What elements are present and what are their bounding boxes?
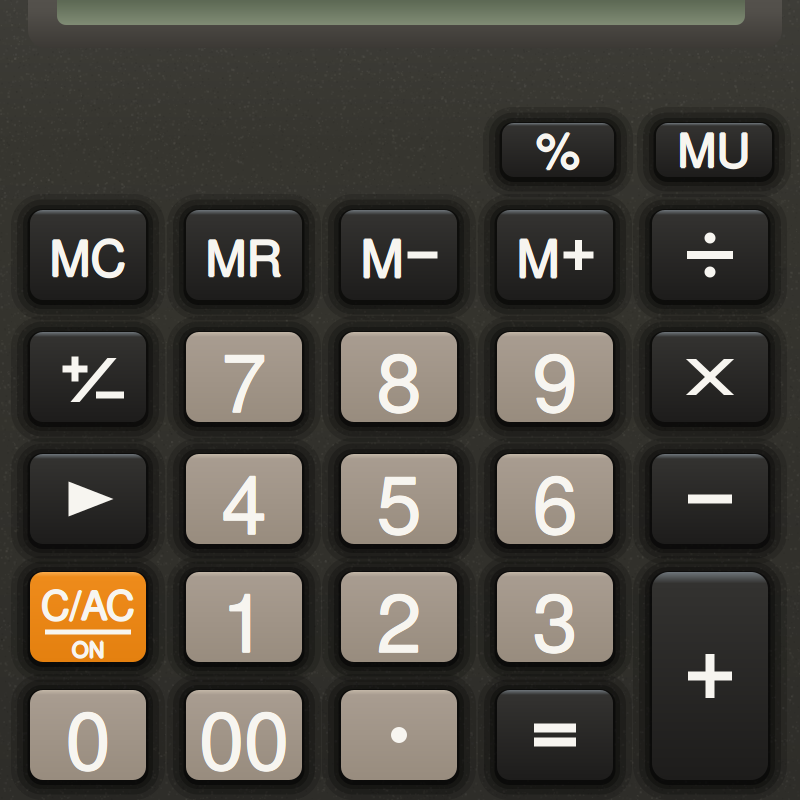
staticText: MR: [206, 220, 283, 290]
staticText: 5: [376, 440, 421, 557]
button[interactable]: 6: [477, 435, 633, 563]
staticText: M: [359, 218, 402, 292]
staticText: ON: [72, 634, 104, 665]
button[interactable]: 5: [321, 435, 477, 563]
staticText: 3: [533, 559, 578, 675]
staticText: 0: [65, 677, 110, 794]
staticText: 00: [199, 676, 289, 793]
button[interactable]: 2: [321, 553, 477, 681]
button[interactable]: Mark up: [636, 104, 792, 196]
staticText: MC: [49, 219, 126, 289]
button[interactable]: Multiply: [632, 313, 788, 441]
staticText: 8: [376, 318, 421, 435]
staticText: MC: [48, 220, 125, 290]
staticText: 6: [532, 441, 577, 558]
staticText: 4: [222, 441, 267, 557]
staticText: 2: [376, 559, 421, 675]
staticText: %: [536, 112, 580, 182]
staticText: 7: [221, 319, 266, 436]
staticText: 1: [221, 559, 266, 675]
staticText: 3: [532, 559, 577, 675]
staticText: MR: [205, 221, 282, 291]
staticText: MC: [49, 221, 126, 291]
button[interactable]: 1: [166, 553, 322, 681]
staticText: MU: [676, 114, 749, 180]
staticText: 0: [65, 677, 110, 793]
staticText: 00: [199, 677, 289, 793]
button[interactable]: Memory minus: [321, 191, 477, 319]
staticText: 6: [532, 441, 577, 557]
staticText: 4: [221, 441, 266, 557]
staticText: 0: [65, 676, 110, 793]
staticText: MU: [677, 113, 750, 179]
button[interactable]: Memory clear: [10, 191, 166, 319]
staticText: MC: [49, 220, 126, 290]
staticText: 00: [199, 677, 289, 794]
button[interactable]: Memory plus: [477, 191, 633, 319]
button[interactable]: Equals: [477, 671, 633, 799]
staticText: 8: [376, 319, 421, 436]
button[interactable]: 9: [477, 313, 633, 441]
staticText: 2: [377, 559, 422, 675]
staticText: 2: [376, 558, 421, 675]
staticText: 9: [532, 319, 577, 435]
button[interactable]: Plus minus: [10, 313, 166, 441]
staticText: ON: [72, 633, 104, 664]
staticText: 6: [533, 441, 578, 557]
staticText: 8: [376, 319, 421, 435]
button[interactable]: 4: [166, 435, 322, 563]
staticText: MR: [205, 219, 282, 289]
button[interactable]: Percent: [482, 104, 634, 196]
staticText: %: [535, 112, 579, 182]
staticText: M: [360, 219, 403, 293]
staticText: 3: [532, 559, 577, 675]
staticText: 3: [532, 558, 577, 675]
staticText: 9: [532, 319, 577, 435]
button[interactable]: Double zero: [166, 671, 322, 799]
button[interactable]: Divide: [632, 191, 788, 319]
staticText: 3: [532, 559, 577, 676]
button[interactable]: 3: [477, 553, 633, 681]
staticText: M: [516, 218, 559, 292]
button[interactable]: Clear, all clear, on: [10, 553, 166, 681]
staticText: 6: [532, 441, 577, 557]
staticText: C/AC: [41, 575, 135, 632]
staticText: 00: [198, 677, 288, 793]
staticText: 1: [221, 558, 266, 675]
button[interactable]: Subtract: [632, 435, 788, 563]
staticText: M: [516, 217, 559, 291]
staticText: C/AC: [42, 574, 136, 631]
button[interactable]: Right shift: [10, 435, 166, 563]
staticText: 5: [376, 441, 421, 557]
staticText: 7: [222, 319, 267, 435]
staticText: 0: [65, 677, 110, 793]
staticText: M: [360, 217, 403, 291]
button[interactable]: 0: [10, 671, 166, 799]
button[interactable]: 8: [321, 313, 477, 441]
staticText: ON: [72, 632, 104, 663]
button[interactable]: Add: [632, 553, 788, 799]
staticText: %: [537, 112, 581, 182]
staticText: 7: [221, 319, 266, 435]
staticText: 1: [222, 559, 267, 675]
staticText: 1: [221, 559, 266, 676]
button[interactable]: Decimal point: [321, 671, 477, 799]
staticText: 9: [532, 319, 577, 436]
staticText: 00: [199, 677, 289, 793]
staticText: ON: [73, 633, 105, 664]
staticText: 9: [532, 318, 577, 435]
staticText: 7: [221, 318, 266, 435]
staticText: M: [516, 219, 559, 293]
button[interactable]: Memory recall: [166, 191, 322, 319]
staticText: 8: [376, 319, 421, 435]
staticText: ON: [71, 633, 103, 664]
staticText: MU: [677, 114, 750, 180]
staticText: MC: [50, 220, 127, 290]
staticText: %: [536, 113, 580, 183]
staticText: M: [361, 218, 404, 292]
staticText: %: [536, 111, 580, 181]
staticText: 8: [377, 319, 422, 435]
button[interactable]: 7: [166, 313, 322, 441]
staticText: 2: [376, 559, 421, 675]
staticText: C/AC: [41, 573, 135, 630]
